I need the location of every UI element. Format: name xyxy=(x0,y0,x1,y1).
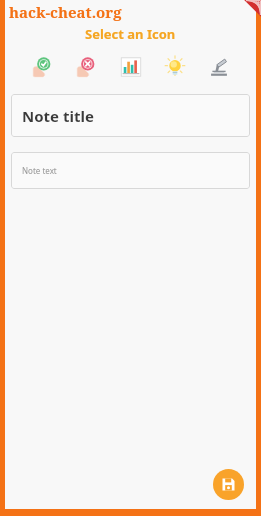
button[interactable]: Note title xyxy=(11,94,250,137)
button[interactable]: Note text xyxy=(11,152,250,189)
staticText: hack-cheat.org xyxy=(9,2,122,22)
staticText: Select an Icon xyxy=(85,25,176,43)
staticText: Note text xyxy=(22,165,57,176)
button[interactable]: Good icon xyxy=(29,54,55,80)
button[interactable]: Chart icon xyxy=(118,54,144,80)
button[interactable]: Save note xyxy=(213,469,244,500)
button[interactable]: Bad icon xyxy=(73,54,99,80)
button[interactable]: Idea icon xyxy=(162,54,188,80)
staticText: Note title xyxy=(22,106,94,126)
button[interactable]: Science icon xyxy=(206,54,232,80)
